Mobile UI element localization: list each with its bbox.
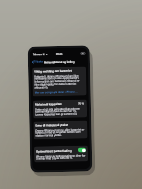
staticText: Telenor N <box>33 52 45 56</box>
staticText: Evne til maksimal ytelse <box>35 123 68 127</box>
staticText: Dette er et mål på batterikapasiteten sa… <box>35 106 85 116</box>
button[interactable]: Evne til maksimal ytelse <box>33 120 88 140</box>
button[interactable]: Maksimal kapasitet <box>33 99 87 119</box>
staticText: Optimalisert batterilading <box>36 149 72 153</box>
staticText: Tilbake <box>34 59 43 64</box>
staticText: Batteritilstand og lading <box>44 60 75 63</box>
button[interactable]: Optimalisert batterilading <box>34 145 88 163</box>
button[interactable]: Mer om uoriginale deler i iPhone ... <box>35 90 78 95</box>
staticText: Maksimal kapasitet <box>35 102 62 107</box>
staticText: Denne iPhone-en er ny, eller batteriet e… <box>35 127 86 137</box>
button[interactable]: Tilbake <box>32 59 43 64</box>
staticText: 76 % <box>78 101 85 106</box>
staticText: 09:46 <box>56 52 63 55</box>
staticText: Viktig melding om batteriet <box>34 69 72 74</box>
button[interactable]: Viktig melding om batteriet <box>32 66 87 97</box>
staticText: Batteriet i denne iPhone-en kan ikke ver… <box>34 73 84 89</box>
button[interactable]: Optimalisert batterilading <box>78 147 86 153</box>
staticText: iPhone lærer av ladingsrutinene dine for… <box>36 153 86 160</box>
